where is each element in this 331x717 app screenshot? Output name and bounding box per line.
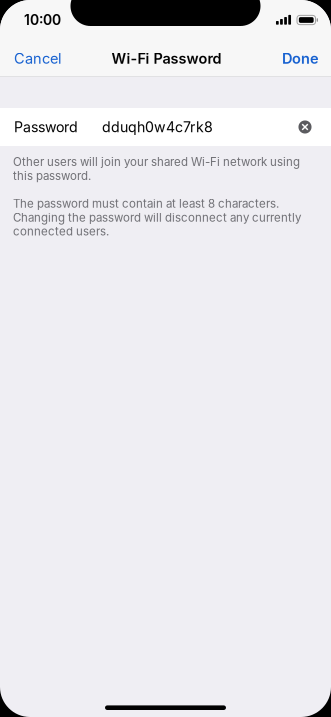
- staticText: Password: [14, 118, 78, 135]
- staticText: Wi-Fi Password: [111, 50, 221, 67]
- staticText: The password must contain at least 8 cha…: [13, 197, 301, 238]
- staticText: Done: [282, 50, 319, 67]
- button[interactable]: Done: [270, 40, 331, 77]
- staticText: Cancel: [14, 50, 62, 67]
- staticText: dduqh0w4c7rk8: [102, 118, 213, 135]
- button[interactable]: Clear text: [295, 111, 315, 143]
- staticText: Other users will join your shared Wi-Fi …: [13, 155, 300, 183]
- button[interactable]: Cancel: [0, 40, 76, 77]
- staticText: 10:00: [24, 12, 61, 28]
